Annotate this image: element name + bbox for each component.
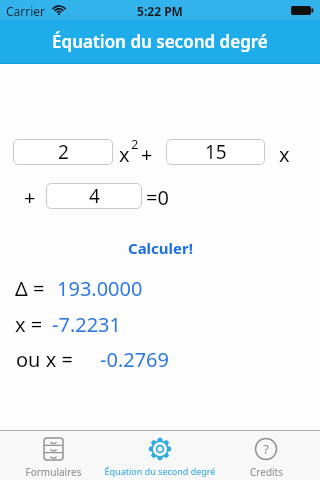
staticText: x = xyxy=(15,311,43,338)
staticText: Calculer! xyxy=(128,238,193,256)
button[interactable]: ? xyxy=(213,431,320,480)
staticText: -0.2769 xyxy=(100,346,169,373)
staticText: Δ = xyxy=(15,275,45,302)
staticText: 2 xyxy=(58,139,69,165)
button[interactable]: Formulaires xyxy=(0,431,107,480)
staticText: Credits xyxy=(213,465,320,479)
staticText: 193.0000 xyxy=(57,275,143,302)
staticText: 2 xyxy=(131,135,139,153)
staticText: x xyxy=(279,141,290,168)
staticText: + xyxy=(141,141,153,168)
staticText: + xyxy=(24,184,36,211)
staticText: x xyxy=(119,141,130,168)
staticText: ? xyxy=(254,440,278,458)
staticText: 4 xyxy=(89,183,100,209)
staticText: 15 xyxy=(205,139,227,165)
staticText: Carrier xyxy=(6,3,46,19)
staticText: ou x = xyxy=(16,346,73,373)
button[interactable]: 2 xyxy=(13,139,113,165)
button[interactable]: 15 xyxy=(166,139,265,165)
staticText: -7.2231 xyxy=(52,311,121,338)
button[interactable]: Calculer! xyxy=(0,238,320,256)
staticText: Équation du second degré xyxy=(85,465,235,479)
staticText: Équation du second degré xyxy=(52,30,268,53)
staticText: Formulaires xyxy=(0,465,107,479)
staticText: 5:22 PM xyxy=(0,3,320,17)
staticText: =0 xyxy=(146,184,169,211)
button[interactable] xyxy=(107,431,213,480)
button[interactable]: 4 xyxy=(46,183,142,209)
